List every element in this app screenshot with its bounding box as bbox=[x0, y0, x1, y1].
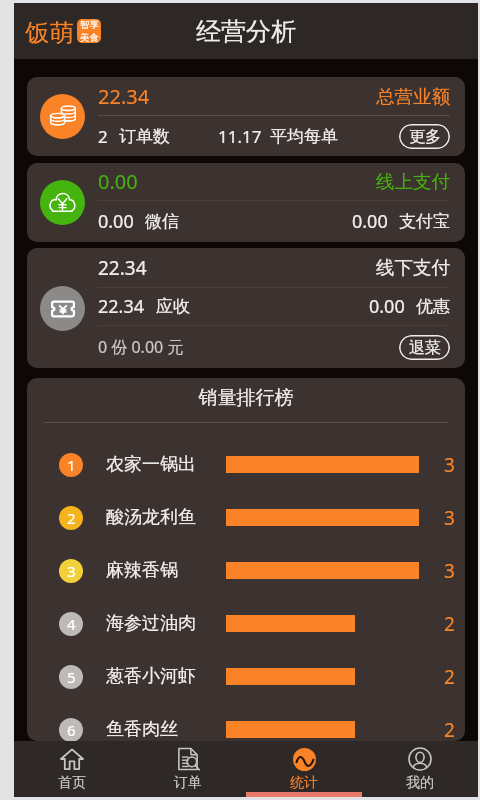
button[interactable]: 首页 bbox=[14, 741, 130, 797]
staticText: 应收 bbox=[156, 296, 190, 317]
staticText: 2 bbox=[444, 664, 455, 690]
staticText: 2 bbox=[444, 717, 455, 741]
staticText: 首页 bbox=[58, 774, 86, 792]
staticText: 线上支付 bbox=[376, 170, 450, 193]
staticText: 我的 bbox=[406, 774, 434, 792]
button[interactable]: 6 bbox=[27, 703, 465, 741]
staticText: 智享 bbox=[80, 19, 99, 31]
staticText: 4 bbox=[67, 614, 76, 634]
staticText: 海参过油肉 bbox=[106, 612, 196, 635]
button[interactable]: 0.00 bbox=[27, 163, 465, 242]
button[interactable]: 22.34 bbox=[27, 248, 465, 368]
staticText: 3 bbox=[444, 505, 455, 531]
staticText: 经营分析 bbox=[196, 16, 296, 47]
staticText: 2 bbox=[67, 508, 76, 528]
button[interactable]: 2 bbox=[27, 491, 465, 544]
button[interactable]: 5 bbox=[27, 650, 465, 703]
staticText: 酸汤龙利鱼 bbox=[106, 506, 196, 529]
staticText: 2 bbox=[98, 125, 108, 148]
staticText: 2 bbox=[444, 611, 455, 637]
button[interactable]: 我的 bbox=[362, 741, 478, 797]
staticText: 美食 bbox=[80, 32, 99, 43]
staticText: 0.00 bbox=[369, 294, 405, 319]
staticText: 微信 bbox=[145, 211, 179, 232]
staticText: 麻辣香锅 bbox=[106, 559, 178, 582]
button[interactable]: 3 bbox=[27, 544, 465, 597]
staticText: 0.00 bbox=[352, 209, 388, 234]
staticText: 平均每单 bbox=[270, 126, 338, 147]
button[interactable]: 订单 bbox=[130, 741, 246, 797]
staticText: 0 份 0.00 元 bbox=[98, 336, 184, 358]
staticText: 订单 bbox=[174, 774, 202, 792]
staticText: 22.34 bbox=[98, 255, 147, 281]
staticText: 订单数 bbox=[119, 126, 170, 147]
staticText: 更多 bbox=[409, 127, 441, 147]
staticText: 5 bbox=[67, 667, 76, 687]
button[interactable]: 4 bbox=[27, 597, 465, 650]
staticText: 3 bbox=[444, 452, 455, 478]
staticText: 退菜 bbox=[409, 338, 441, 358]
staticText: 3 bbox=[444, 558, 455, 584]
staticText: 1 bbox=[67, 455, 76, 475]
staticText: 22.34 bbox=[98, 83, 150, 110]
staticText: 统计 bbox=[290, 774, 318, 792]
staticText: 优惠 bbox=[416, 296, 450, 317]
staticText: 3 bbox=[67, 561, 76, 581]
button[interactable]: 1 bbox=[27, 438, 465, 491]
staticText: 鱼香肉丝 bbox=[106, 718, 178, 741]
other: 首页 bbox=[60, 747, 84, 771]
staticText: 饭萌 bbox=[25, 18, 74, 44]
staticText: 6 bbox=[67, 720, 76, 740]
other: 订单 bbox=[176, 747, 200, 771]
other: 统计 bbox=[293, 748, 316, 771]
staticText: 葱香小河虾 bbox=[106, 665, 196, 688]
staticText: 11.17 bbox=[218, 125, 262, 148]
other: 我的 bbox=[408, 747, 432, 771]
staticText: 农家一锅出 bbox=[106, 453, 196, 476]
staticText: 0.00 bbox=[98, 168, 138, 195]
staticText: 支付宝 bbox=[399, 211, 450, 232]
staticText: 0.00 bbox=[98, 209, 134, 234]
button[interactable]: 退菜 bbox=[399, 335, 450, 360]
staticText: 总营业额 bbox=[376, 85, 450, 108]
staticText: 线下支付 bbox=[376, 256, 450, 279]
button[interactable]: 更多 bbox=[399, 124, 450, 149]
staticText: 22.34 bbox=[98, 294, 145, 319]
button[interactable]: 22.34 bbox=[27, 77, 465, 156]
staticText: 销量排行榜 bbox=[27, 386, 465, 410]
button[interactable]: 统计 bbox=[246, 741, 362, 797]
